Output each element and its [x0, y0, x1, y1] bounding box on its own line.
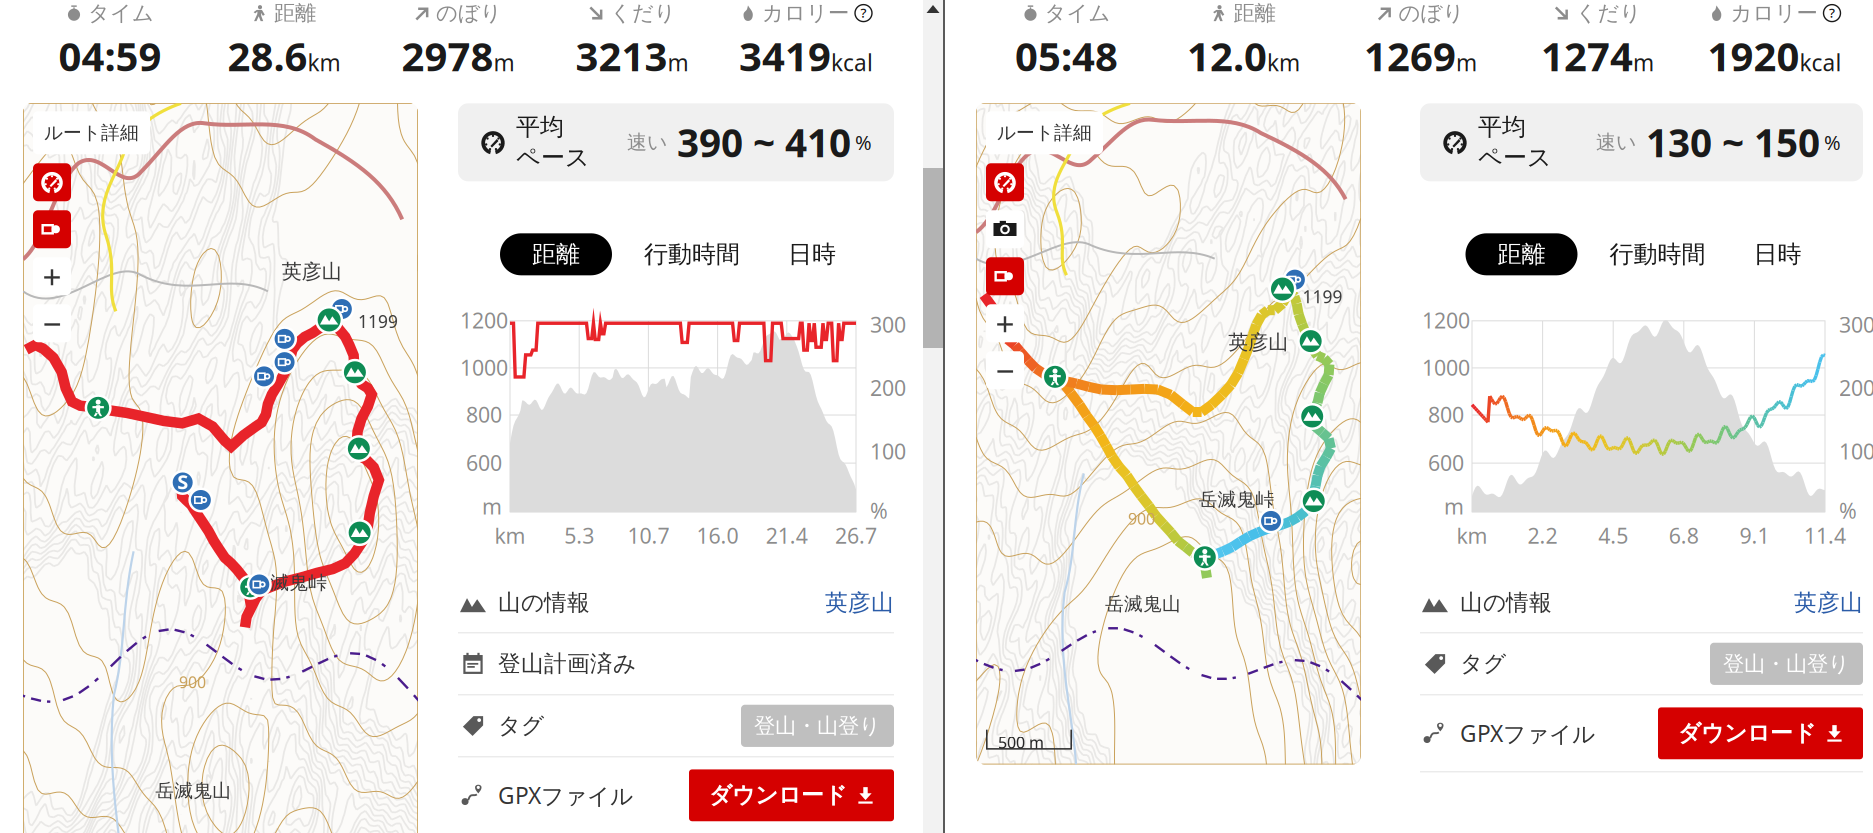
staticText: 300 — [870, 310, 906, 339]
staticText: + — [995, 301, 1014, 345]
staticText: 12.0 — [1187, 29, 1267, 82]
staticText: S — [177, 468, 188, 495]
staticText: m — [1456, 47, 1477, 77]
staticText: 26.7 — [835, 521, 877, 550]
staticText: 行動時間 — [1609, 240, 1705, 269]
staticText: 10.7 — [627, 521, 669, 550]
staticText: GPXファイル — [498, 780, 633, 810]
staticText: 1000 — [460, 353, 508, 382]
button[interactable]: 距離 — [500, 233, 612, 275]
staticText: ルート詳細 — [997, 121, 1092, 144]
button[interactable]: 日時 — [772, 233, 852, 275]
staticText: 日時 — [788, 240, 836, 269]
staticText: タイム — [1044, 0, 1110, 26]
staticText: 岳滅鬼峠 — [251, 571, 327, 594]
staticText: 平均 — [1478, 112, 1526, 142]
button[interactable]: 登山・山登り — [741, 705, 894, 747]
button[interactable]: 縮小 — [33, 304, 71, 342]
staticText: kcal — [831, 47, 873, 77]
staticText: kcal — [1799, 47, 1841, 77]
staticText: ? — [860, 4, 866, 21]
staticText: 行動時間 — [644, 240, 740, 269]
staticText: 山の情報 — [1460, 589, 1552, 617]
staticText: 21.4 — [766, 521, 808, 550]
staticText: 05:48 — [1015, 29, 1118, 82]
staticText: − — [42, 301, 61, 345]
staticText: 4.5 — [1598, 521, 1628, 550]
staticText: 1200 — [1422, 306, 1470, 334]
staticText: 2.2 — [1528, 521, 1558, 550]
staticText: 500 m — [998, 732, 1044, 753]
button[interactable]: 縮小 — [986, 351, 1024, 389]
staticText: + — [42, 254, 61, 298]
button[interactable]: ダウンロード — [689, 769, 894, 821]
button[interactable]: ペース — [33, 163, 71, 201]
staticText: 1199 — [1302, 285, 1342, 308]
staticText: 山の情報 — [498, 589, 590, 617]
staticText: 英彦山 — [282, 259, 342, 284]
staticText: % — [855, 129, 872, 156]
staticText: % — [1824, 129, 1841, 156]
staticText: 岳滅鬼山 — [1105, 592, 1181, 615]
staticText: 英彦山 — [1228, 330, 1288, 355]
staticText: 16.0 — [697, 521, 739, 550]
button[interactable]: 英彦山 — [1794, 589, 1863, 617]
button[interactable]: 休憩 — [986, 257, 1024, 295]
staticText: のぼり — [1398, 0, 1464, 26]
staticText: 100 — [870, 437, 906, 465]
staticText: 200 — [870, 374, 906, 402]
button[interactable]: 登山・山登り — [1710, 643, 1863, 685]
staticText: m — [667, 47, 688, 77]
staticText: 英彦山 — [825, 589, 894, 617]
staticText: 登山計画済み — [498, 650, 636, 678]
staticText: 390 ~ 410 — [677, 117, 851, 168]
button[interactable]: 写真 — [986, 210, 1024, 248]
button[interactable]: 休憩 — [33, 210, 71, 248]
staticText: 1000 — [1422, 353, 1470, 382]
button[interactable]: ルート詳細 — [33, 111, 150, 154]
button[interactable]: ペース — [986, 163, 1024, 201]
staticText: 速い — [627, 130, 667, 155]
staticText: くだり — [1575, 0, 1641, 26]
staticText: 平均 — [516, 112, 564, 142]
button[interactable]: 行動時間 — [1601, 233, 1713, 275]
staticText: カロリー — [762, 0, 849, 26]
button[interactable]: 日時 — [1737, 233, 1817, 275]
button[interactable]: ルート詳細 — [986, 111, 1103, 154]
staticText: 200 — [1839, 374, 1873, 402]
staticText: ダウンロード — [1678, 719, 1816, 747]
staticText: m — [482, 492, 502, 520]
staticText: 1274 — [1541, 29, 1633, 82]
staticText: 28.6 — [227, 29, 307, 82]
staticText: 日時 — [1753, 240, 1801, 269]
staticText: タイム — [88, 0, 154, 26]
staticText: タグ — [1460, 650, 1506, 678]
staticText: 距離 — [1233, 0, 1275, 26]
button[interactable]: 拡大 — [33, 257, 71, 295]
button[interactable]: 拡大 — [986, 304, 1024, 342]
staticText: 11.4 — [1804, 521, 1846, 550]
staticText: ダウンロード — [709, 781, 847, 809]
staticText: GPXファイル — [1460, 718, 1595, 748]
staticText: カロリー — [1730, 0, 1817, 26]
staticText: ペース — [516, 143, 590, 172]
staticText: ペース — [1478, 143, 1552, 172]
staticText: くだり — [610, 0, 676, 26]
staticText: m — [1444, 492, 1464, 520]
staticText: ? — [1829, 4, 1835, 21]
button[interactable]: 距離 — [1465, 233, 1577, 275]
staticText: km — [494, 521, 525, 550]
staticText: % — [870, 496, 888, 525]
staticText: 1200 — [460, 306, 508, 334]
button[interactable]: 行動時間 — [636, 233, 748, 275]
staticText: m — [1633, 47, 1654, 77]
staticText: − — [995, 348, 1014, 392]
button[interactable]: ダウンロード — [1658, 707, 1863, 759]
staticText: 英彦山 — [1794, 589, 1863, 617]
staticText: 800 — [1428, 400, 1464, 429]
staticText: ルート詳細 — [44, 121, 139, 144]
staticText: km — [307, 47, 340, 77]
button[interactable]: 英彦山 — [825, 589, 894, 617]
staticText: 速い — [1596, 130, 1636, 155]
staticText: 600 — [1428, 448, 1464, 477]
